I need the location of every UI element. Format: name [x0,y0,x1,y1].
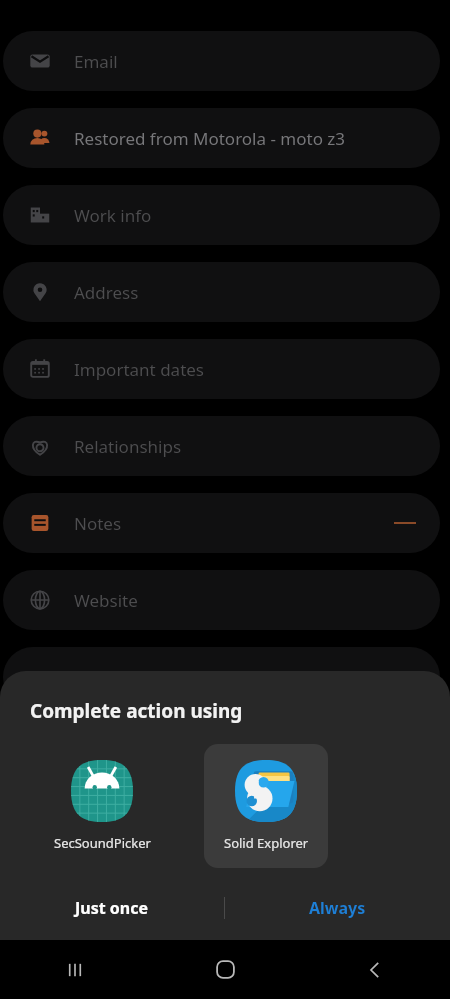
button[interactable]: Back [300,940,450,999]
button[interactable]: Notes [3,493,440,553]
button[interactable]: Work info [3,185,440,245]
staticText: Complete action using [30,698,243,724]
button[interactable]: Always [225,882,450,934]
button[interactable]: Important dates [3,339,440,399]
staticText: SecSoundPicker [54,834,151,852]
staticText: Email [74,50,420,73]
button[interactable]: Relationships [3,416,440,476]
staticText: Always [309,897,366,919]
button[interactable]: Recent apps [0,940,150,999]
staticText: Important dates [74,358,420,381]
button[interactable]: Home [150,940,300,999]
staticText: Website [74,589,420,612]
staticText: Address [74,281,420,304]
button[interactable]: Restored from Motorola - moto z3 [3,108,440,168]
button[interactable]: Address [3,262,440,322]
staticText: Messenger accounts [74,666,420,689]
staticText: Just once [75,897,149,919]
staticText: Notes [74,512,394,535]
button[interactable]: SecSoundPicker [40,744,164,868]
staticText: Solid Explorer [224,834,309,852]
button[interactable]: Just once [0,882,224,934]
button[interactable]: Email [3,31,440,91]
staticText: Work info [74,204,420,227]
button[interactable]: Website [3,570,440,630]
staticText: Restored from Motorola - moto z3 [74,127,420,150]
button[interactable]: Messenger accounts [3,647,440,707]
button[interactable]: Solid Explorer [204,744,328,868]
staticText: Relationships [74,435,420,458]
